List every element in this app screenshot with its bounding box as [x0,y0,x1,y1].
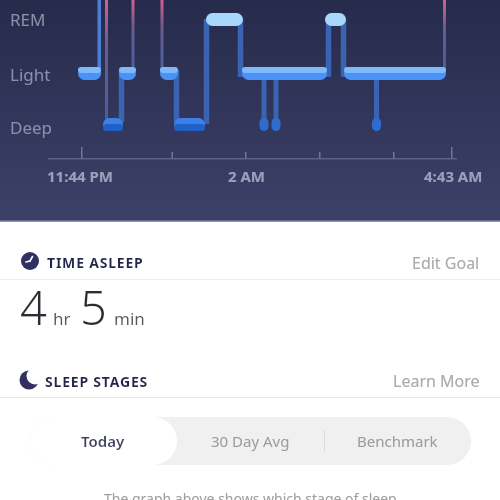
staticText: Benchmark [357,431,438,451]
staticText: REM [10,8,46,31]
button[interactable]: Learn More [387,364,486,394]
staticText: Light [10,63,51,86]
button[interactable]: Edit Goal [406,246,486,276]
staticText: Today [81,431,125,451]
staticText: 2 AM [228,166,266,186]
staticText: hr [53,307,71,330]
staticText: 4 [20,275,47,339]
button[interactable]: 30 Day Avg [177,417,324,465]
staticText: 11:44 PM [47,166,113,186]
button[interactable]: Today [29,417,177,465]
staticText: min [114,307,145,330]
staticText: 5 [80,275,107,339]
staticText: Deep [10,116,53,139]
staticText: Edit Goal [412,252,480,270]
staticText: The graph above shows which stage of sle… [104,489,397,500]
staticText: SLEEP STAGES [45,372,149,391]
button[interactable]: Benchmark [324,417,471,465]
staticText: Learn More [393,370,480,388]
staticText: 30 Day Avg [211,431,290,451]
staticText: TIME ASLEEP [47,253,144,272]
staticText: 4:43 AM [424,166,483,186]
